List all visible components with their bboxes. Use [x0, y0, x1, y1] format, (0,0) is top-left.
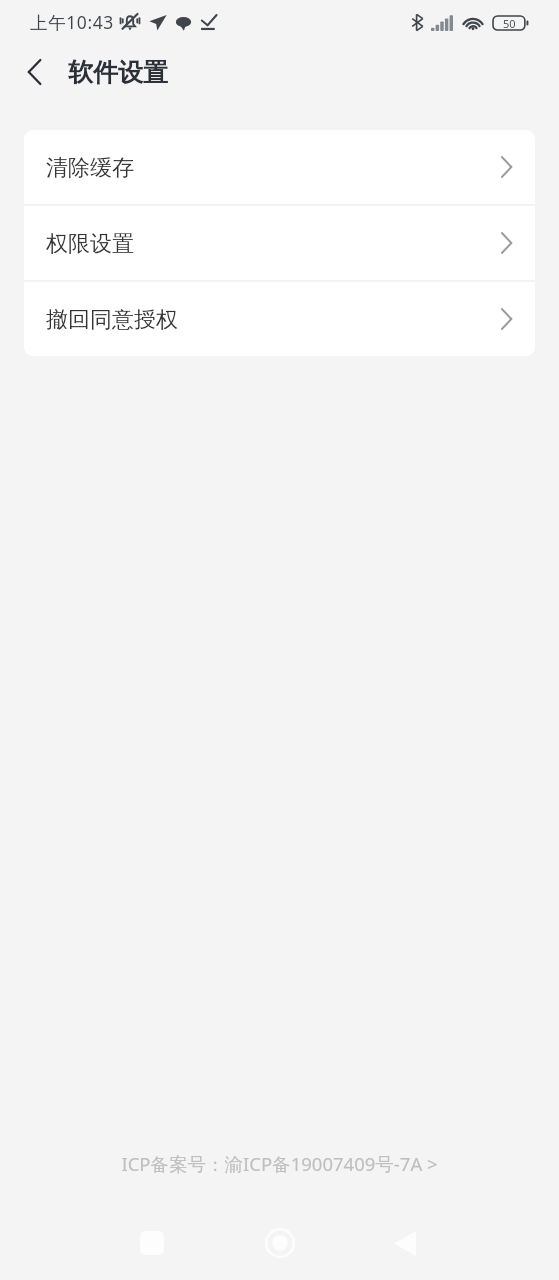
staticText: 上午10:43	[30, 10, 114, 34]
staticText: 撤回同意授权	[46, 306, 178, 334]
staticText: 清除缓存	[46, 154, 134, 182]
staticText: 软件设置	[68, 57, 168, 88]
button[interactable]: Back	[0, 44, 68, 100]
button[interactable]: 撤回同意授权	[24, 282, 535, 356]
staticText: ICP备案号：渝ICP备19007409号-7A >	[121, 1151, 438, 1176]
button[interactable]: 清除缓存	[24, 130, 535, 204]
staticText: 50	[503, 16, 516, 31]
staticText: 权限设置	[46, 230, 134, 258]
button[interactable]: 权限设置	[24, 206, 535, 280]
